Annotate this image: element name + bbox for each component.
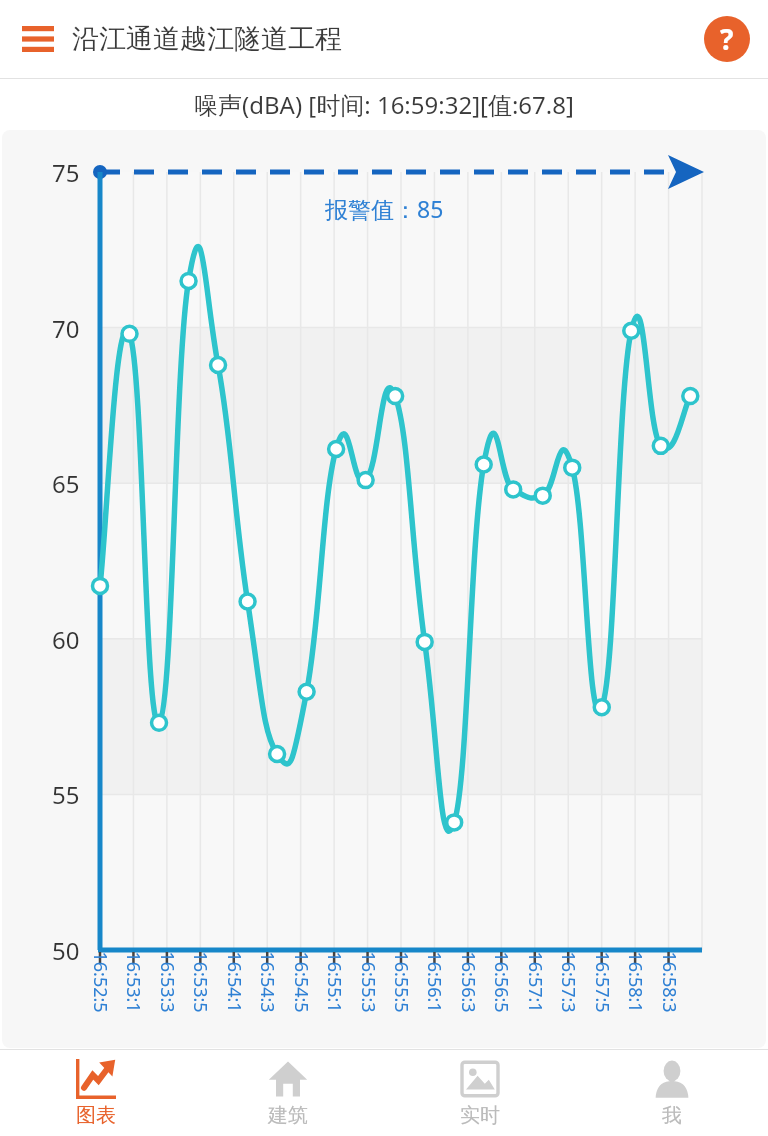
button[interactable]: 实时	[384, 1050, 576, 1136]
staticText: 图表	[76, 1103, 116, 1128]
staticText: 16:55:3	[355, 951, 380, 1013]
staticText: 16:54:5	[288, 951, 313, 1013]
staticText: 16:54:1	[221, 951, 246, 1013]
staticText: 实时	[460, 1103, 500, 1128]
staticText: 16:53:3	[154, 951, 179, 1013]
button[interactable]: 建筑	[192, 1050, 384, 1136]
staticText: 沿江通道越江隧道工程	[72, 22, 342, 56]
staticText: 70	[52, 312, 80, 345]
staticText: 16:55:5	[388, 951, 413, 1013]
staticText: 报警值：85	[325, 193, 444, 224]
staticText: 75	[52, 156, 80, 189]
staticText: 16:58:1	[622, 951, 647, 1013]
staticText: 55	[52, 778, 80, 811]
staticText: 16:57:3	[555, 951, 580, 1013]
staticText: 16:56:3	[455, 951, 480, 1013]
staticText: 16:56:5	[488, 951, 513, 1013]
staticText: 16:57:1	[522, 951, 547, 1013]
staticText: 建筑	[268, 1103, 308, 1128]
staticText: 60	[52, 623, 80, 656]
staticText: 16:58:3	[656, 951, 681, 1013]
staticText: 16:53:1	[120, 951, 145, 1013]
staticText: 16:52:5	[87, 951, 112, 1013]
staticText: 50	[52, 934, 80, 967]
button[interactable]: Help	[702, 14, 752, 64]
staticText: 噪声(dBA) [时间: 16:59:32][值:67.8]	[194, 88, 574, 121]
staticText: 16:55:1	[321, 951, 346, 1013]
staticText: 16:54:3	[254, 951, 279, 1013]
button[interactable]: 图表	[0, 1050, 192, 1136]
staticText: 16:57:5	[589, 951, 614, 1013]
staticText: 65	[52, 467, 80, 500]
button[interactable]: Open navigation menu	[14, 15, 62, 63]
button[interactable]: 报警值：85	[2, 130, 766, 1048]
staticText: 16:56:1	[421, 951, 446, 1013]
staticText: 16:53:5	[187, 951, 212, 1013]
button[interactable]: 我	[576, 1050, 768, 1136]
staticText: 我	[662, 1103, 682, 1128]
staticText: ?	[720, 20, 734, 58]
